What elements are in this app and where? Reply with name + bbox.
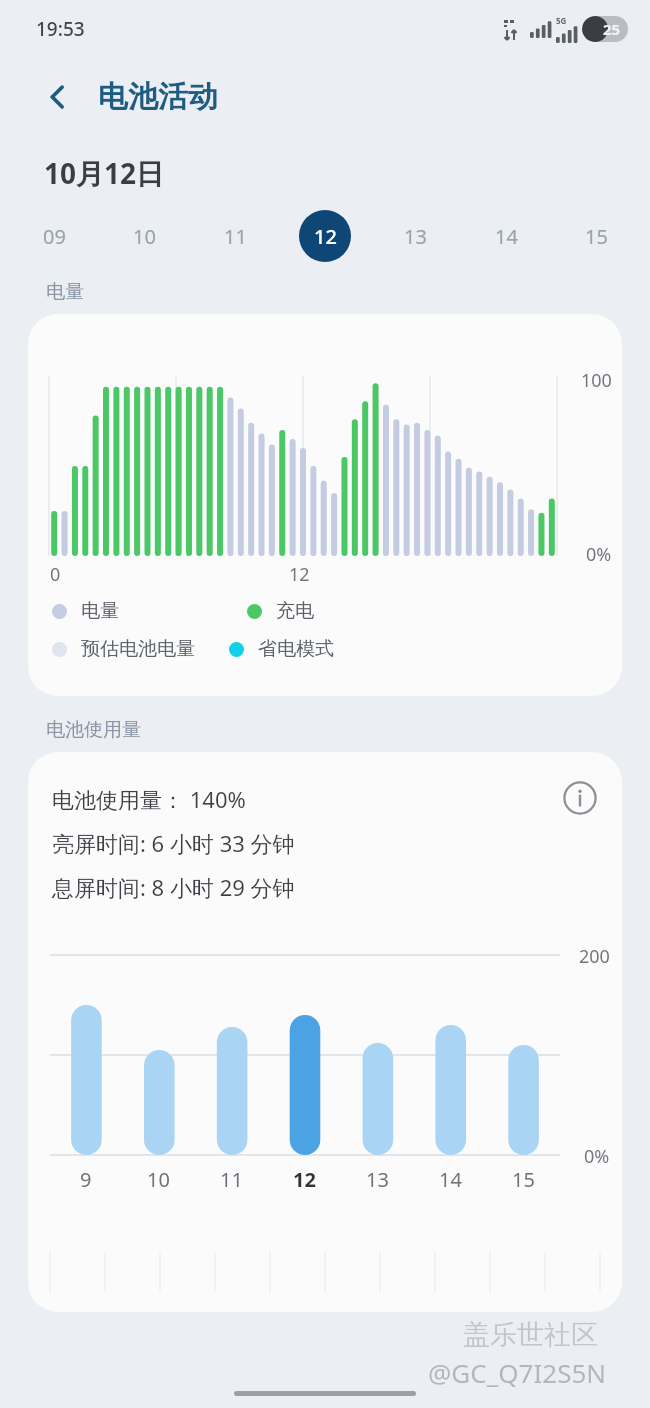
staticText: 12	[289, 562, 310, 587]
staticText: 预估电池电量	[81, 637, 195, 661]
staticText: 盖乐世社区	[463, 1318, 598, 1352]
staticText: 200	[579, 944, 610, 969]
staticText: 省电模式	[258, 637, 334, 661]
staticText: 13	[404, 223, 427, 250]
button[interactable]: 100	[28, 314, 622, 696]
button[interactable]: 13	[389, 210, 441, 262]
staticText: 电池活动	[98, 78, 218, 116]
staticText: 14	[439, 1166, 462, 1193]
staticText: 充电	[276, 599, 314, 623]
staticText: 09	[43, 223, 66, 250]
staticText: 0%	[586, 542, 612, 567]
button[interactable]: 10	[118, 210, 170, 262]
staticText: 11	[220, 1166, 243, 1193]
button[interactable]: 14	[480, 210, 532, 262]
staticText: 电池使用量： 140%	[52, 784, 246, 814]
staticText: 电量	[46, 280, 84, 304]
staticText: 15	[512, 1166, 535, 1193]
staticText: 10月12日	[44, 154, 165, 192]
staticText: 13	[366, 1166, 389, 1193]
staticText: 25	[603, 19, 621, 39]
staticText: 11	[224, 223, 247, 250]
button[interactable]: 15	[570, 210, 622, 262]
button[interactable]: 电池使用量： 140%	[28, 752, 622, 1312]
staticText: 息屏时间: 8 小时 29 分钟	[52, 872, 295, 902]
staticText: 电池使用量	[46, 718, 141, 742]
staticText: 10	[147, 1166, 170, 1193]
staticText: 9	[80, 1166, 92, 1193]
button[interactable]: Back	[36, 75, 80, 119]
button[interactable]: Info	[558, 776, 602, 820]
staticText: 0%	[584, 1144, 610, 1169]
staticText: 15	[585, 223, 608, 250]
staticText: @GC_Q7I2S5N	[428, 1355, 607, 1390]
staticText: 100	[581, 368, 612, 393]
staticText: 电量	[81, 599, 119, 623]
staticText: 12	[293, 1166, 316, 1193]
button[interactable]: 11	[209, 210, 261, 262]
staticText: 5G	[556, 15, 567, 26]
staticText: 19:53	[36, 16, 85, 42]
button[interactable]: 12	[299, 210, 351, 262]
staticText: 亮屏时间: 6 小时 33 分钟	[52, 828, 295, 858]
staticText: 12	[314, 223, 337, 250]
staticText: 0	[50, 562, 61, 587]
staticText: 10	[133, 223, 156, 250]
staticText: 14	[495, 223, 518, 250]
button[interactable]: 09	[28, 210, 80, 262]
